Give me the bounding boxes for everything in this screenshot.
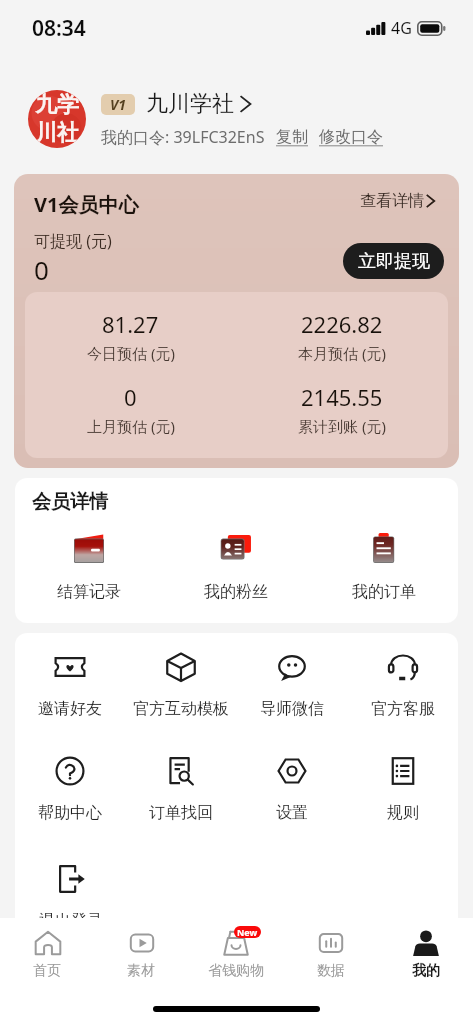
- button[interactable]: 2226.82: [236, 309, 448, 363]
- other: Shopping: [222, 929, 250, 957]
- staticText: 九川学社: [146, 90, 234, 118]
- staticText: 81.27: [102, 309, 159, 339]
- button[interactable]: 导师微信: [236, 651, 347, 719]
- button[interactable]: V1会员中心: [14, 174, 459, 468]
- staticText: 素材: [127, 962, 155, 980]
- button[interactable]: 规则: [347, 755, 458, 823]
- staticText: 邀请好友: [38, 699, 102, 719]
- staticText: 九: [35, 91, 57, 119]
- staticText: 累计到账 (元): [298, 416, 386, 436]
- staticText: 导师微信: [260, 699, 324, 719]
- staticText: 省钱购物: [208, 962, 264, 980]
- staticText: 数据: [317, 962, 345, 980]
- staticText: New: [237, 926, 258, 938]
- staticText: 结算记录: [57, 582, 121, 602]
- other: Home: [34, 929, 62, 957]
- staticText: 川: [35, 119, 57, 147]
- staticText: 退出登录: [39, 911, 103, 931]
- button[interactable]: Data: [283, 928, 378, 980]
- button[interactable]: Profile: [378, 928, 473, 980]
- staticText: 设置: [276, 803, 308, 823]
- button[interactable]: 0: [25, 382, 236, 436]
- staticText: 社: [57, 119, 79, 147]
- staticText: 4G: [391, 17, 412, 39]
- staticText: 学: [57, 91, 79, 119]
- staticText: 我的口令: 39LFC32EnS: [101, 126, 265, 148]
- button[interactable]: 结算记录: [15, 531, 162, 602]
- button[interactable]: Home: [0, 928, 94, 980]
- staticText: 订单找回: [149, 803, 213, 823]
- other: Profile: [412, 929, 440, 957]
- button[interactable]: 帮助中心: [15, 755, 125, 823]
- button[interactable]: Avatar: [28, 90, 86, 148]
- staticText: V1: [110, 95, 126, 114]
- button[interactable]: 我的订单: [310, 531, 458, 602]
- staticText: 今日预估 (元): [87, 343, 175, 363]
- staticText: 立即提现: [358, 250, 430, 273]
- button[interactable]: 复制: [276, 127, 308, 147]
- staticText: 首页: [33, 962, 61, 980]
- staticText: V1会员中心: [34, 191, 139, 218]
- button[interactable]: 我的粉丝: [162, 531, 310, 602]
- button[interactable]: 官方客服: [347, 651, 458, 719]
- other: Materials: [128, 929, 156, 957]
- staticText: 上月预估 (元): [87, 416, 175, 436]
- button[interactable]: Materials: [94, 928, 188, 980]
- staticText: 官方客服: [371, 699, 435, 719]
- staticText: 官方互动模板: [133, 699, 229, 719]
- staticText: 我的订单: [352, 582, 416, 602]
- button[interactable]: 81.27: [25, 309, 236, 363]
- button[interactable]: 官方互动模板: [125, 651, 236, 719]
- staticText: 2226.82: [301, 309, 383, 339]
- button[interactable]: 2145.55: [236, 382, 448, 436]
- button[interactable]: Shopping: [188, 928, 283, 980]
- staticText: 我的粉丝: [204, 582, 268, 602]
- button[interactable]: 设置: [236, 755, 347, 823]
- other: Data: [317, 929, 345, 957]
- staticText: 会员详情: [32, 490, 108, 514]
- staticText: 0: [34, 252, 49, 287]
- button[interactable]: 订单找回: [125, 755, 236, 823]
- staticText: 本月预估 (元): [298, 343, 386, 363]
- staticText: 2145.55: [301, 382, 383, 412]
- staticText: 可提现 (元): [34, 230, 112, 252]
- staticText: 我的: [412, 962, 440, 980]
- staticText: 08:34: [32, 14, 86, 43]
- staticText: 查看详情: [360, 191, 424, 211]
- staticText: 帮助中心: [38, 803, 102, 823]
- button[interactable]: 退出登录: [15, 863, 126, 931]
- button[interactable]: 查看详情: [360, 191, 435, 211]
- button[interactable]: 立即提现: [343, 243, 444, 279]
- staticText: 0: [124, 382, 137, 412]
- button[interactable]: 邀请好友: [15, 651, 125, 719]
- button[interactable]: 修改口令: [319, 127, 383, 147]
- staticText: 规则: [387, 803, 419, 823]
